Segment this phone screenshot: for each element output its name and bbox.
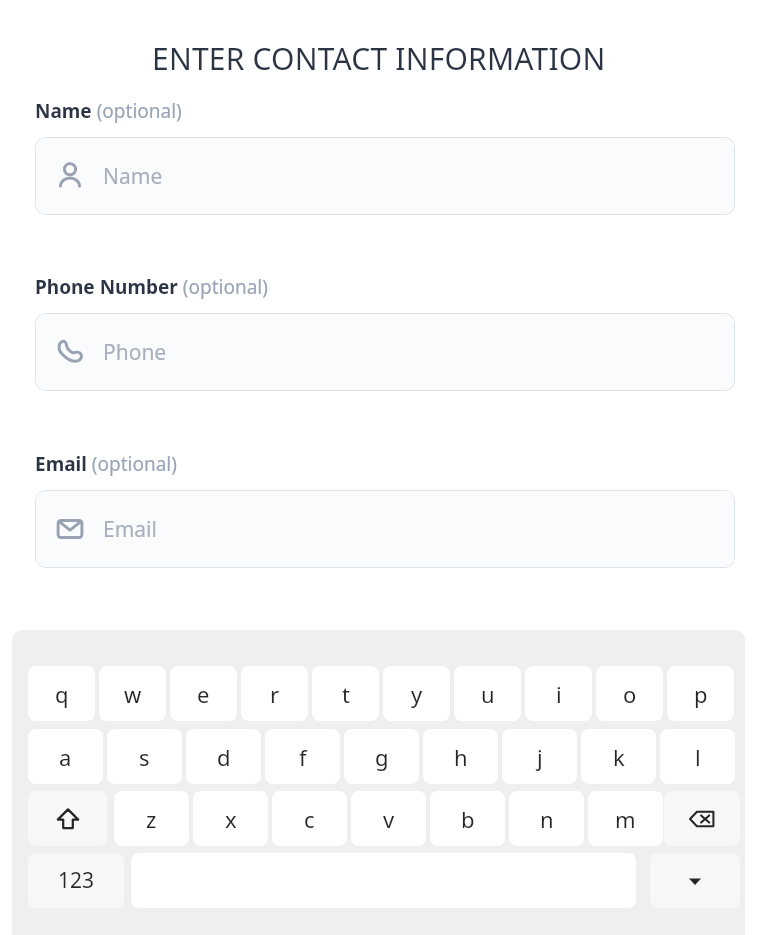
staticText: n: [540, 804, 554, 834]
staticText: o: [623, 679, 637, 709]
staticText: u: [481, 679, 495, 709]
button[interactable]: Hide keyboard: [650, 853, 740, 908]
staticText: e: [197, 679, 210, 709]
button[interactable]: d: [186, 729, 261, 784]
button[interactable]: q: [28, 666, 95, 721]
button[interactable]: l: [660, 729, 735, 784]
button[interactable]: e: [170, 666, 237, 721]
staticText: Name (optional): [35, 98, 182, 124]
button[interactable]: k: [581, 729, 656, 784]
button[interactable]: Shift: [28, 791, 107, 846]
button[interactable]: h: [423, 729, 498, 784]
button[interactable]: j: [502, 729, 577, 784]
staticText: m: [615, 804, 636, 834]
staticText: z: [146, 804, 157, 834]
button[interactable]: y: [383, 666, 450, 721]
button[interactable]: 123: [28, 853, 124, 908]
staticText: p: [694, 679, 708, 709]
button[interactable]: b: [430, 791, 505, 846]
button[interactable]: n: [509, 791, 584, 846]
staticText: c: [304, 804, 315, 834]
button[interactable]: t: [312, 666, 379, 721]
staticText: h: [454, 742, 468, 772]
button[interactable]: Phone: [35, 313, 735, 391]
button[interactable]: Backspace: [664, 791, 740, 846]
staticText: v: [383, 804, 395, 834]
staticText: l: [695, 742, 701, 772]
staticText: ENTER CONTACT INFORMATION: [152, 38, 606, 79]
button[interactable]: r: [241, 666, 308, 721]
staticText: f: [299, 742, 307, 772]
staticText: g: [375, 742, 389, 772]
staticText: y: [411, 679, 423, 709]
button[interactable]: g: [344, 729, 419, 784]
button[interactable]: u: [454, 666, 521, 721]
button[interactable]: s: [107, 729, 182, 784]
staticText: w: [124, 679, 142, 709]
staticText: x: [225, 804, 237, 834]
staticText: s: [139, 742, 150, 772]
staticText: Email: [103, 515, 157, 544]
staticText: r: [270, 679, 280, 709]
staticText: Phone Number (optional): [35, 274, 268, 300]
button[interactable]: Email: [35, 490, 735, 568]
button[interactable]: i: [525, 666, 592, 721]
staticText: i: [556, 679, 562, 709]
staticText: Email (optional): [35, 451, 177, 477]
staticText: q: [55, 679, 69, 709]
staticText: 123: [58, 866, 95, 895]
staticText: a: [59, 742, 72, 772]
button[interactable]: m: [588, 791, 663, 846]
staticText: Name: [103, 162, 163, 191]
button[interactable]: f: [265, 729, 340, 784]
button[interactable]: x: [193, 791, 268, 846]
button[interactable]: v: [351, 791, 426, 846]
staticText: d: [217, 742, 231, 772]
button[interactable]: a: [28, 729, 103, 784]
staticText: t: [342, 679, 350, 709]
button[interactable]: c: [272, 791, 347, 846]
staticText: j: [537, 742, 543, 772]
staticText: Phone: [103, 338, 167, 367]
button[interactable]: o: [596, 666, 663, 721]
button[interactable]: p: [667, 666, 734, 721]
button[interactable]: w: [99, 666, 166, 721]
staticText: k: [613, 742, 625, 772]
staticText: b: [461, 804, 475, 834]
button[interactable]: Name: [35, 137, 735, 215]
button[interactable]: z: [114, 791, 189, 846]
